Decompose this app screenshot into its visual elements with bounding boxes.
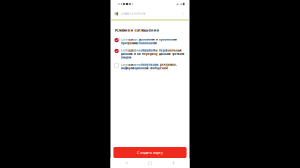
staticText: Соглашаюсь на обработку персональных дан… — [121, 49, 184, 59]
staticText: Создать карту — [137, 150, 163, 155]
button[interactable]: Соглашаюсь на обработку персональных дан… — [114, 49, 184, 59]
staticText: pmarket-k.ru/terms — [121, 12, 145, 15]
button[interactable]: Создать карту — [113, 147, 187, 158]
button[interactable]: Recent apps — [166, 158, 181, 168]
button[interactable]: Соглашаюсь на получение рекламно-информа… — [114, 63, 184, 70]
button[interactable]: Home — [142, 158, 157, 168]
staticText: Условия и соглашения — [114, 27, 158, 33]
button[interactable]: Соглашаюсь с условиями и правилами прогр… — [114, 38, 184, 45]
button[interactable]: Back — [119, 158, 134, 168]
staticText: Соглашаюсь с условиями и правилами прогр… — [121, 38, 177, 45]
staticText: Соглашаюсь на получение рекламно-информа… — [121, 63, 177, 70]
